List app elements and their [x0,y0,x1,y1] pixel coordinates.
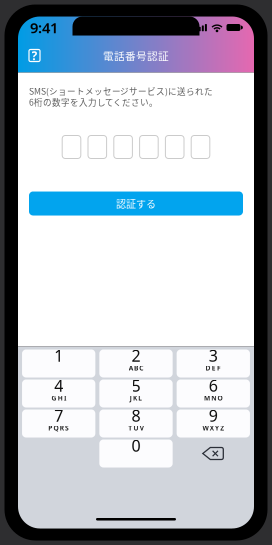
button[interactable]: Delete [177,439,250,467]
staticText: 5 [131,375,140,396]
staticText: 3 [209,345,218,366]
staticText: 6 [209,375,218,396]
staticText: 6桁の数字を入力してください。 [29,96,158,108]
button[interactable]: 7 [22,409,95,437]
staticText: GHI [51,394,66,402]
button[interactable]: 5 [99,379,173,407]
staticText: 認証する [116,196,156,211]
button[interactable]: 3 [177,349,250,377]
staticText: 0 [131,435,140,456]
staticText: MNO [204,394,223,402]
button[interactable]: 2 [99,349,173,377]
staticText: 9 [209,405,218,426]
button[interactable]: 9 [177,409,250,437]
button[interactable]: 4 [22,379,95,407]
button[interactable]: 8 [99,409,173,437]
staticText: 電話番号認証 [103,48,169,63]
button[interactable]: 6 [177,379,250,407]
staticText: 9:41 [30,18,58,37]
staticText: 4 [54,375,63,396]
button[interactable]: Help [18,40,48,70]
staticText: SMS(ショートメッセージサービス)に送られた [29,85,213,97]
button[interactable]: 認証する [29,191,243,215]
staticText: ABC [129,364,143,372]
staticText: TUV [128,424,144,432]
staticText: ? [31,47,37,63]
staticText: 1 [54,345,63,366]
button[interactable]: 1 [22,349,95,377]
staticText: 2 [131,345,140,366]
staticText: 8 [131,405,140,426]
staticText: PQRS [48,424,69,432]
staticText: DEF [206,364,221,372]
staticText: WXYZ [202,424,224,432]
staticText: JKL [130,394,142,402]
staticText: 7 [54,405,63,426]
button[interactable]: 0 [99,439,173,467]
